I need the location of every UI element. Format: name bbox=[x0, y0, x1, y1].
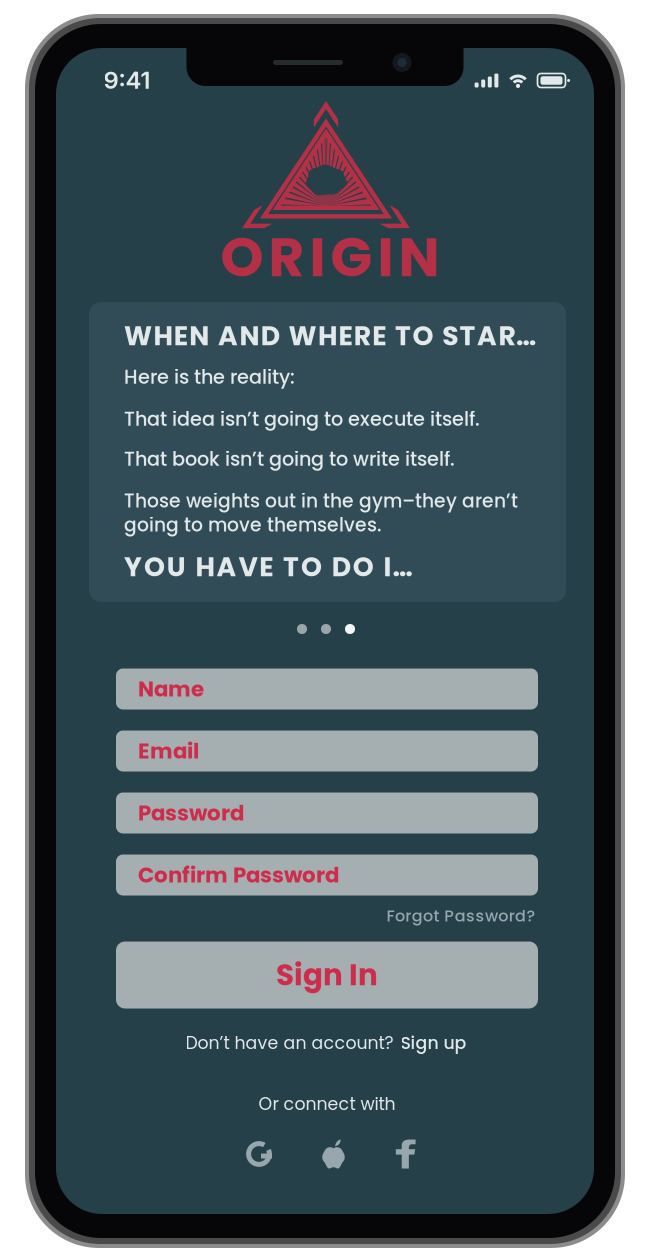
staticText: Here is the reality: bbox=[124, 364, 295, 390]
button[interactable]: Forgot Password? bbox=[386, 905, 535, 927]
staticText: Or connect with bbox=[258, 1092, 395, 1116]
button[interactable]: Name bbox=[116, 668, 538, 709]
staticText: YOU HAVE TO DO IT. bbox=[124, 548, 419, 586]
button[interactable]: Sign In bbox=[116, 941, 538, 1008]
staticText: Sign In bbox=[276, 954, 378, 996]
button[interactable]: Email bbox=[116, 730, 538, 771]
button[interactable]: Continue with Google bbox=[246, 1141, 272, 1167]
button[interactable]: Continue with Facebook bbox=[395, 1139, 416, 1168]
staticText: Those weights out in the gym–they aren’t bbox=[124, 488, 518, 514]
staticText: Sign up bbox=[400, 1031, 466, 1055]
staticText: Don’t have an account? bbox=[185, 1031, 393, 1055]
button[interactable]: Password bbox=[116, 792, 538, 833]
staticText: That book isn’t going to write itself. bbox=[124, 446, 455, 472]
staticText: Forgot Password? bbox=[386, 905, 535, 927]
staticText: Name bbox=[138, 674, 204, 704]
staticText: 9:41 bbox=[103, 65, 150, 94]
button[interactable]: Confirm Password bbox=[116, 854, 538, 895]
staticText: Confirm Password bbox=[138, 860, 339, 890]
staticText: Password bbox=[138, 798, 244, 828]
button[interactable]: Sign up bbox=[400, 1031, 466, 1055]
staticText: That idea isn’t going to execute itself. bbox=[124, 406, 480, 432]
staticText: Email bbox=[138, 736, 199, 766]
staticText: going to move themselves. bbox=[124, 512, 381, 538]
button[interactable]: Continue with Apple bbox=[321, 1139, 346, 1168]
staticText: WHEN AND WHERE TO START? bbox=[124, 317, 548, 355]
staticText: ORIGIN bbox=[220, 219, 439, 295]
